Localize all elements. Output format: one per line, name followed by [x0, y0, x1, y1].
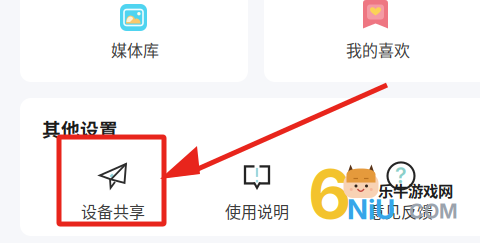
staticText: ?: [395, 162, 407, 188]
staticText: 使用说明: [225, 199, 289, 223]
staticText: 我的喜欢: [346, 38, 410, 61]
button[interactable]: 使用说明: [185, 163, 329, 221]
button[interactable]: 媒体库: [74, 0, 194, 62]
staticText: 媒体库: [111, 38, 159, 61]
staticText: 乐牛游戏网: [378, 179, 453, 201]
button[interactable]: ?: [329, 163, 473, 221]
staticText: 6: [308, 154, 351, 235]
button[interactable]: 我的喜欢: [316, 0, 436, 62]
button[interactable]: 设备共享: [41, 163, 185, 221]
staticText: NiU: [347, 192, 395, 226]
staticText: 其他设置: [42, 115, 118, 142]
staticText: 设备共享: [81, 199, 145, 223]
staticText: 意见反馈: [369, 199, 433, 223]
staticText: COM: [409, 199, 458, 223]
